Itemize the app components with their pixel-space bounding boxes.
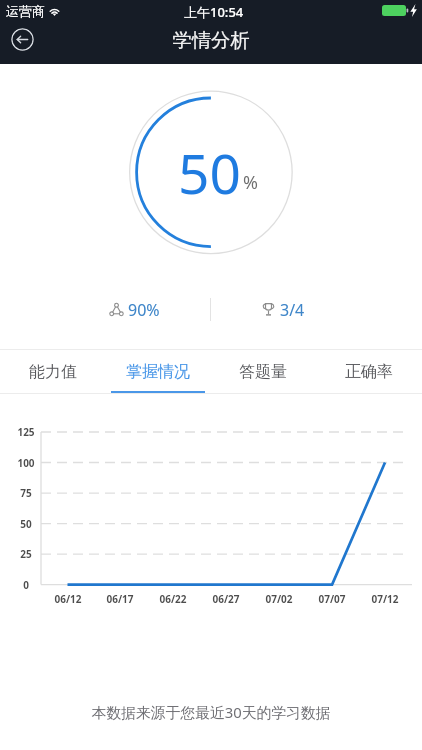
staticText: 06/22 [149, 592, 197, 606]
staticText: 本数据来源于您最近30天的学习数据 [0, 702, 422, 722]
staticText: 上午10:54 [184, 3, 244, 21]
staticText: 90% [128, 299, 160, 321]
staticText: 100 [6, 456, 46, 470]
staticText: 06/17 [96, 592, 144, 606]
staticText: 50 [6, 517, 46, 531]
staticText: 07/07 [308, 592, 356, 606]
button[interactable]: Back [11, 28, 34, 51]
staticText: 06/27 [202, 592, 250, 606]
staticText: 学情分析 [0, 28, 422, 52]
staticText: 能力值 [29, 362, 77, 382]
staticText: 75 [6, 486, 46, 500]
staticText: 运营商 [6, 3, 45, 19]
staticText: 06/12 [44, 592, 92, 606]
staticText: 答题量 [239, 362, 287, 382]
staticText: 0 [6, 578, 46, 592]
staticText: 3/4 [280, 299, 305, 321]
staticText: 07/12 [361, 592, 409, 606]
button[interactable]: 能力值 [0, 350, 105, 393]
staticText: 25 [6, 547, 46, 561]
staticText: 正确率 [345, 362, 393, 382]
button[interactable]: 掌握情况 [105, 350, 210, 393]
button[interactable]: 答题量 [210, 350, 316, 393]
staticText: 07/02 [255, 592, 303, 606]
staticText: % [243, 170, 258, 195]
staticText: 掌握情况 [126, 362, 190, 382]
button[interactable]: 正确率 [316, 350, 422, 393]
staticText: 125 [6, 425, 46, 439]
staticText: 50 [178, 135, 241, 210]
